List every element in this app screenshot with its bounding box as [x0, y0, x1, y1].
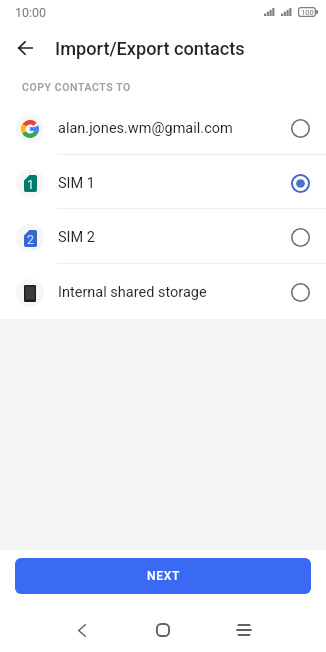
button[interactable]: alan.jones.wm@gmail.com: [0, 100, 326, 155]
staticText: Internal shared storage: [58, 284, 207, 301]
staticText: COPY CONTACTS TO: [22, 81, 131, 93]
button[interactable]: NEXT: [15, 558, 311, 594]
button[interactable]: Navigate up: [8, 30, 43, 65]
button[interactable]: 1: [0, 155, 326, 209]
staticText: SIM 2: [58, 229, 95, 246]
button[interactable]: Recent apps: [203, 608, 284, 652]
staticText: 10:00: [15, 5, 47, 20]
button[interactable]: Back: [41, 608, 122, 652]
staticText: 1: [27, 177, 35, 192]
button[interactable]: Internal shared storage: [0, 264, 326, 319]
staticText: NEXT: [147, 569, 180, 583]
staticText: alan.jones.wm@gmail.com: [58, 120, 233, 137]
staticText: 100: [301, 8, 314, 17]
staticText: SIM 1: [58, 175, 95, 192]
staticText: Import/Export contacts: [55, 38, 245, 59]
staticText: 2: [27, 232, 35, 247]
button[interactable]: 2: [0, 209, 326, 264]
button[interactable]: Home: [122, 608, 203, 652]
